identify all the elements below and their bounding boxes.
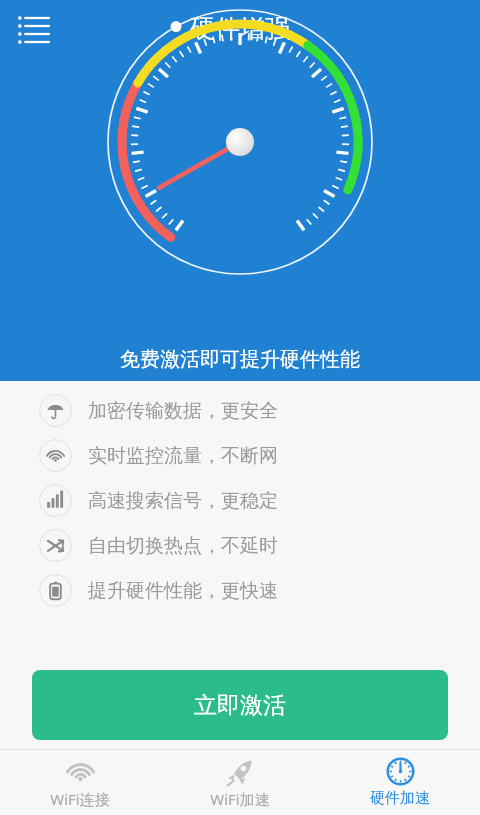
button[interactable]: WiFi连接 <box>0 750 160 815</box>
staticText: 提升硬件性能，更快速 <box>88 579 278 603</box>
button[interactable]: Menu <box>10 6 58 54</box>
button[interactable]: WiFi加速 <box>160 750 320 815</box>
staticText: WiFi连接 <box>50 789 110 809</box>
button[interactable]: 加密传输数据，更安全 <box>0 388 480 433</box>
button[interactable]: 硬件加速 <box>320 750 480 815</box>
staticText: WiFi加速 <box>210 789 270 809</box>
button[interactable]: 实时监控流量，不断网 <box>0 433 480 478</box>
staticText: 免费激活即可提升硬件性能 <box>120 347 360 372</box>
staticText: 立即激活 <box>194 691 286 720</box>
button[interactable]: 提升硬件性能，更快速 <box>0 568 480 613</box>
button[interactable]: 自由切换热点，不延时 <box>0 523 480 568</box>
button[interactable]: 立即激活 <box>32 670 448 740</box>
staticText: 实时监控流量，不断网 <box>88 444 278 468</box>
staticText: 加密传输数据，更安全 <box>88 399 278 423</box>
staticText: 高速搜索信号，更稳定 <box>88 489 278 513</box>
staticText: 硬件加速 <box>370 789 430 808</box>
staticText: 硬件增强 <box>190 13 290 44</box>
button[interactable]: 高速搜索信号，更稳定 <box>0 478 480 523</box>
staticText: 自由切换热点，不延时 <box>88 534 278 558</box>
